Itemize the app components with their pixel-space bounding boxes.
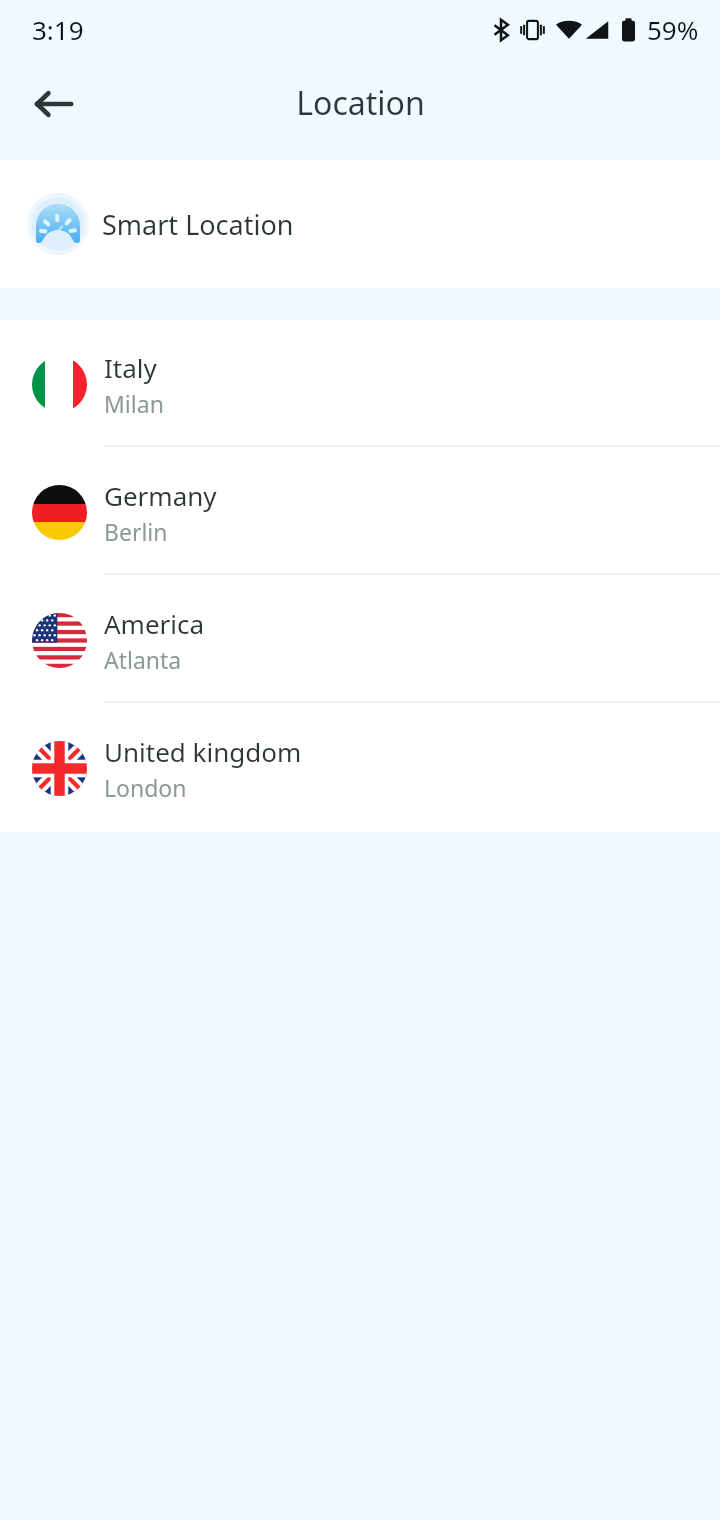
staticText: Atlanta [104,644,182,675]
staticText: London [104,772,187,803]
staticText: Smart Location [102,206,294,243]
staticText: United kingdom [104,734,302,769]
staticText: 3:19 [32,12,84,47]
staticText: Italy [104,350,157,385]
staticText: Berlin [104,516,168,547]
button[interactable]: United kingdom [0,704,720,832]
button[interactable]: Smart Location [0,160,720,288]
staticText: 59% [647,12,699,47]
button[interactable]: Germany [0,448,720,576]
button[interactable]: Back [14,64,94,144]
button[interactable]: Italy [0,320,720,448]
staticText: America [104,606,205,641]
staticText: Location [296,81,425,125]
staticText: Milan [104,388,164,419]
staticText: Germany [104,478,217,513]
button[interactable]: America [0,576,720,704]
